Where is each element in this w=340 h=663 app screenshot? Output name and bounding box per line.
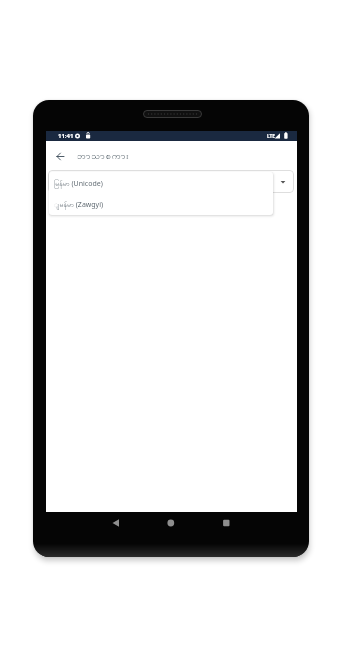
button[interactable] xyxy=(51,147,69,165)
staticText: ျမန်မာ (Zawgyi) xyxy=(54,200,104,211)
staticText: မြန်မာ (Unicode) xyxy=(54,179,103,190)
staticText: ဘာသာစကား xyxy=(77,150,130,163)
staticText: 11:41 xyxy=(58,132,74,140)
button[interactable] xyxy=(158,511,183,536)
button[interactable] xyxy=(48,170,294,193)
button[interactable] xyxy=(103,511,128,536)
button[interactable] xyxy=(214,511,239,536)
staticText: LTE xyxy=(267,133,276,140)
button[interactable]: ျမန်မာ (Zawgyi) xyxy=(49,194,273,215)
button[interactable]: မြန်မာ (Unicode) xyxy=(49,173,273,195)
